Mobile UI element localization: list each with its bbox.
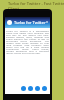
staticText: Turbo for Twitter: [14, 20, 46, 25]
staticText: Turbo for Twitter is a lightweight clien…: [6, 29, 49, 54]
other: More options: [46, 21, 48, 23]
button[interactable]: Action: [35, 86, 40, 91]
button[interactable]: Action: [28, 86, 33, 91]
button[interactable]: Action: [42, 86, 47, 91]
button[interactable]: Turbo for Twitter: [5, 17, 50, 28]
button[interactable]: Action: [21, 86, 26, 91]
staticText: Turbo for Twitter - Fast Twitter Client: [8, 1, 64, 11]
